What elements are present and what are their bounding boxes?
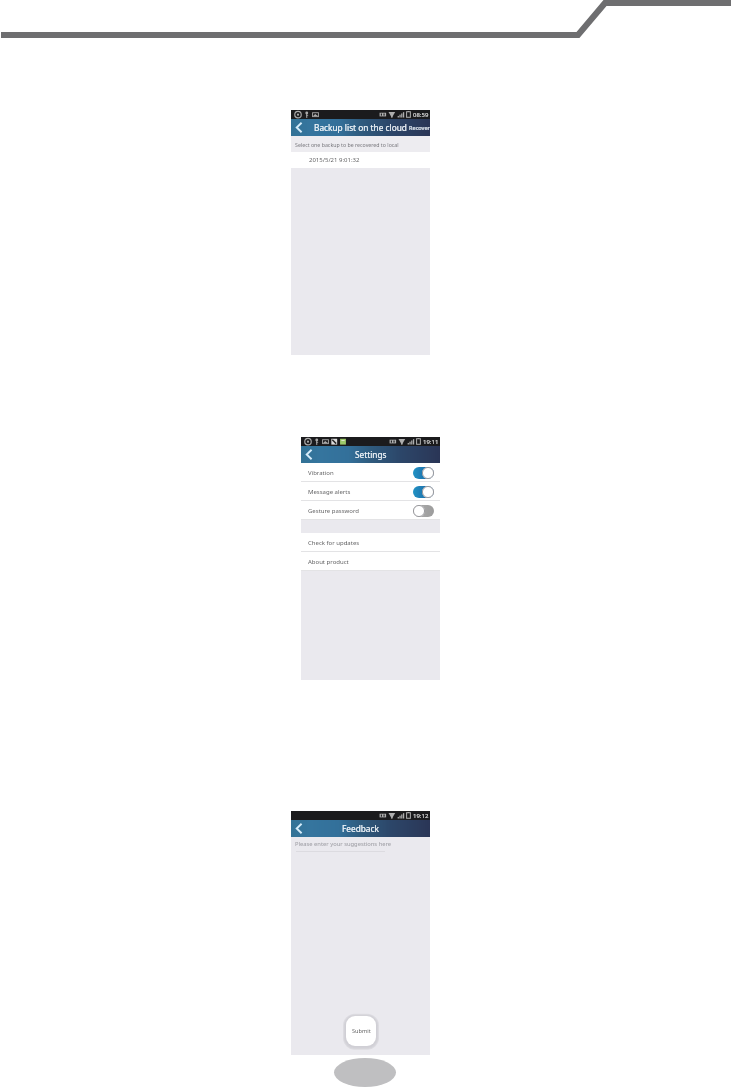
staticText: Submit: [352, 1027, 371, 1035]
button[interactable]: Message alerts: [301, 482, 440, 501]
staticText: Settings: [355, 449, 387, 460]
staticText: 2015/5/21 9:01:32: [309, 156, 360, 164]
staticText: Check for updates: [308, 539, 360, 547]
staticText: Backup list on the cloud: [314, 122, 407, 133]
staticText: Select one backup to be recovered to loc…: [295, 141, 399, 148]
button[interactable]: Vibration: [301, 463, 440, 482]
button[interactable]: Message alerts on: [413, 486, 434, 498]
button[interactable]: Recover: [409, 119, 430, 136]
staticText: Recover: [409, 124, 430, 132]
staticText: About product: [308, 558, 349, 566]
button[interactable]: Back: [301, 446, 316, 463]
staticText: Vibration: [308, 469, 334, 477]
staticText: 08:59: [413, 111, 429, 119]
button[interactable]: About product: [301, 552, 440, 571]
button[interactable]: Gesture password: [301, 501, 440, 520]
staticText: 19:12: [413, 812, 429, 820]
staticText: 19:11: [423, 438, 439, 446]
button[interactable]: Gesture password off: [413, 505, 434, 517]
button[interactable]: Back: [291, 820, 306, 837]
staticText: Message alerts: [308, 488, 351, 496]
staticText: Gesture password: [308, 507, 360, 515]
button[interactable]: Vibration on: [413, 467, 434, 479]
button[interactable]: Back: [291, 119, 306, 136]
staticText: Feedback: [342, 823, 379, 834]
button[interactable]: 2015/5/21 9:01:32: [291, 152, 430, 168]
button[interactable]: Check for updates: [301, 533, 440, 552]
staticText: Please enter your suggestions here: [295, 840, 392, 848]
button[interactable]: Submit: [346, 1016, 376, 1046]
